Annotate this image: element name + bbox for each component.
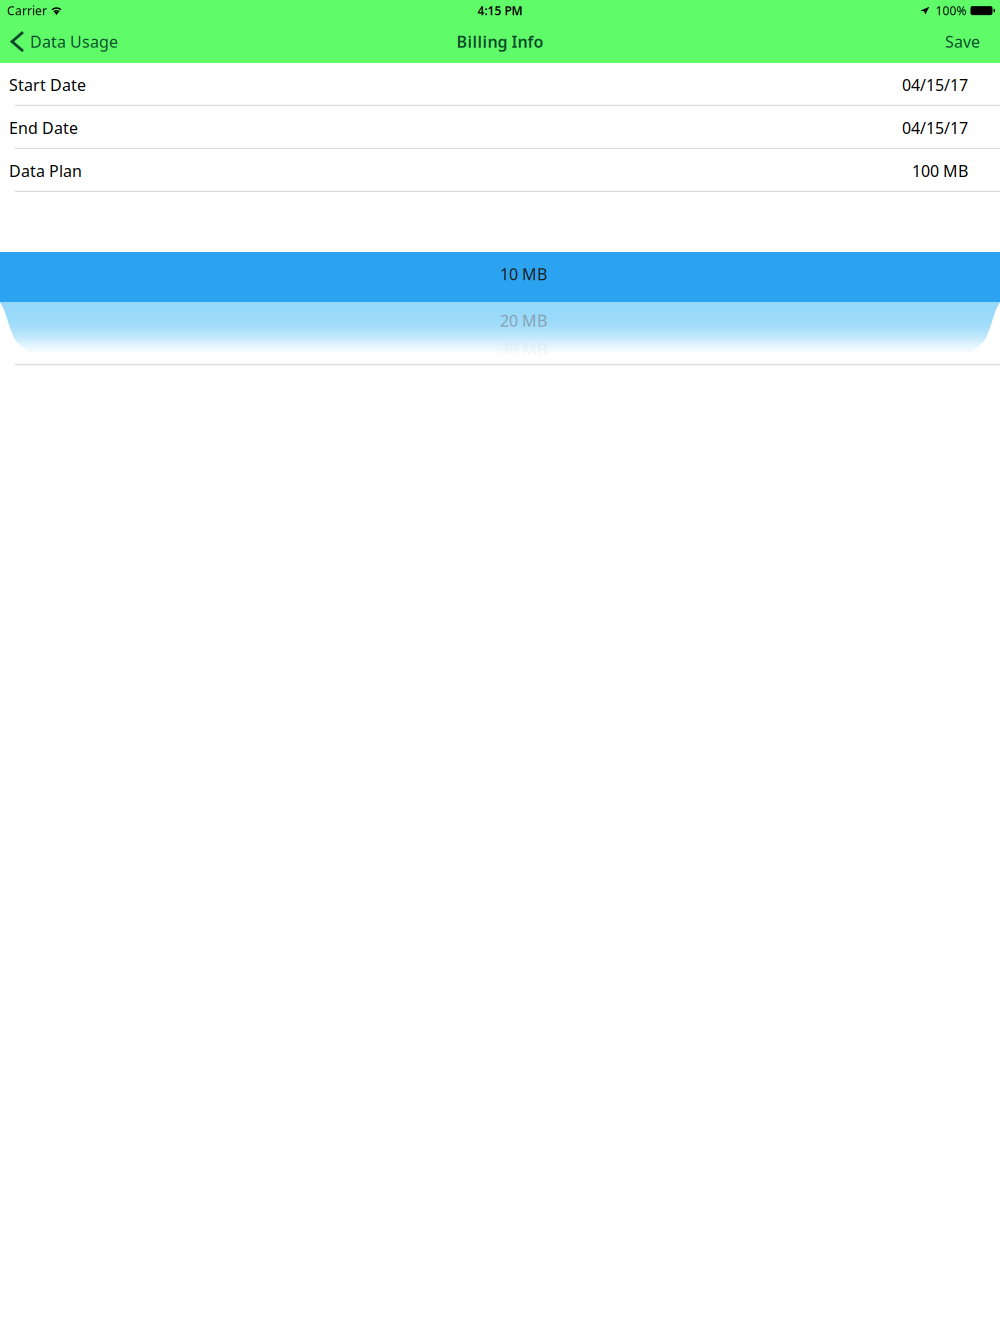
staticText: End Date xyxy=(9,117,78,138)
staticText: Billing Info xyxy=(456,31,543,52)
button[interactable]: Save xyxy=(935,21,990,63)
staticText: 4:15 PM xyxy=(477,3,522,18)
staticText: 100 MB xyxy=(912,160,968,181)
staticText: Save xyxy=(945,31,980,52)
staticText: 04/15/17 xyxy=(902,117,968,138)
staticText: Start Date xyxy=(9,74,86,95)
staticText: 100% xyxy=(935,3,966,18)
button[interactable]: Start Date xyxy=(0,63,1000,106)
button[interactable]: Data Plan xyxy=(0,149,1000,192)
button[interactable]: Data Usage xyxy=(0,21,128,63)
staticText: 30 MB xyxy=(500,338,547,360)
staticText: 20 MB xyxy=(500,310,547,331)
staticText: 10 MB xyxy=(500,263,547,285)
staticText: Carrier xyxy=(7,3,47,18)
staticText: 04/15/17 xyxy=(902,74,968,95)
staticText: Data Plan xyxy=(9,160,82,181)
button[interactable]: End Date xyxy=(0,106,1000,149)
staticText: Data Usage xyxy=(30,31,118,52)
